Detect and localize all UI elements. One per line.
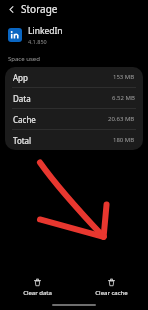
staticText: 20.63 MB <box>108 115 135 123</box>
staticText: Storage <box>21 2 58 16</box>
staticText: App <box>13 72 28 83</box>
button[interactable]: Cache <box>5 109 143 129</box>
button[interactable]: App <box>5 67 143 87</box>
button[interactable]: Data <box>5 88 143 108</box>
staticText: 6.52 MB <box>112 94 135 102</box>
staticText: Total <box>13 135 32 146</box>
staticText: 180 MB <box>113 136 135 144</box>
staticText: Clear data <box>23 289 52 297</box>
button[interactable]: Clear cache <box>74 276 148 299</box>
staticText: Space used <box>8 55 40 63</box>
staticText: 153 MB <box>113 73 135 81</box>
staticText: Cache <box>13 114 36 125</box>
staticText: 4.1.850 <box>28 38 47 45</box>
button[interactable]: Total <box>5 130 143 150</box>
staticText: Clear cache <box>95 289 128 297</box>
staticText: Data <box>13 93 31 104</box>
staticText: LinkedIn <box>28 25 63 37</box>
button[interactable]: Clear data <box>0 276 74 299</box>
button[interactable]: Back <box>4 2 18 16</box>
